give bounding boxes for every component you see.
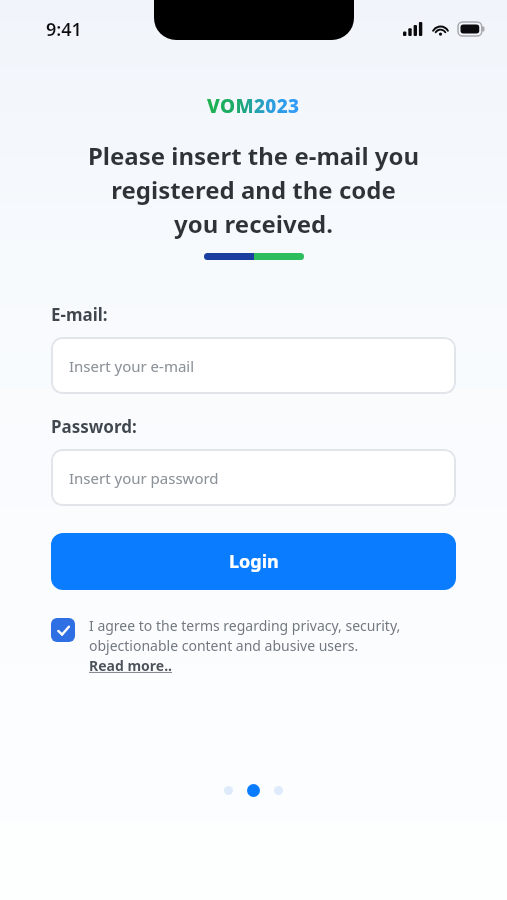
staticText: Login xyxy=(229,549,279,574)
button[interactable]: Insert your password xyxy=(51,449,456,506)
staticText: 9:41 xyxy=(46,17,82,42)
staticText: I agree to the terms regarding privacy, … xyxy=(89,616,401,656)
staticText: VOM2023 xyxy=(207,93,300,119)
staticText: Password: xyxy=(51,415,137,438)
button[interactable]: Login xyxy=(51,533,456,590)
button[interactable]: Page 2, current page xyxy=(247,784,260,797)
staticText: E-mail: xyxy=(51,303,108,326)
button[interactable]: Agree to terms xyxy=(51,618,75,642)
button[interactable]: Page 1 xyxy=(224,786,233,795)
staticText: Please insert the e-mail you registered … xyxy=(18,139,489,240)
staticText: Insert your password xyxy=(69,468,219,488)
staticText: Read more.. xyxy=(89,656,173,675)
staticText: Insert your e-mail xyxy=(69,356,195,376)
button[interactable]: Insert your e-mail xyxy=(51,337,456,394)
button[interactable]: Page 3 xyxy=(274,786,283,795)
button[interactable]: Read more.. xyxy=(89,656,173,675)
